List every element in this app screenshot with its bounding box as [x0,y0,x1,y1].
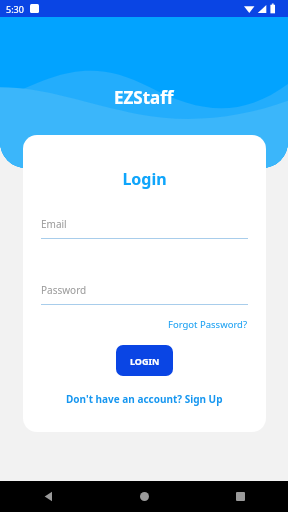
staticText: Don't have an account? Sign Up [66,392,223,406]
button[interactable]: Home [96,481,192,512]
button[interactable]: Email [41,217,248,239]
staticText: Login [41,168,248,190]
staticText: LOGIN [130,355,160,367]
staticText: Forgot Password? [168,318,248,331]
button[interactable]: LOGIN [116,345,173,376]
button[interactable]: Back [0,481,96,512]
staticText: Email [41,217,67,231]
staticText: Password [41,283,87,297]
button[interactable]: Forgot Password? [41,318,248,331]
staticText: EZStaff [114,86,174,109]
staticText: 5:30 [6,3,24,15]
button[interactable]: Password [41,283,248,305]
button[interactable]: Don't have an account? Sign Up [41,392,248,406]
button[interactable]: Recent apps [192,481,288,512]
